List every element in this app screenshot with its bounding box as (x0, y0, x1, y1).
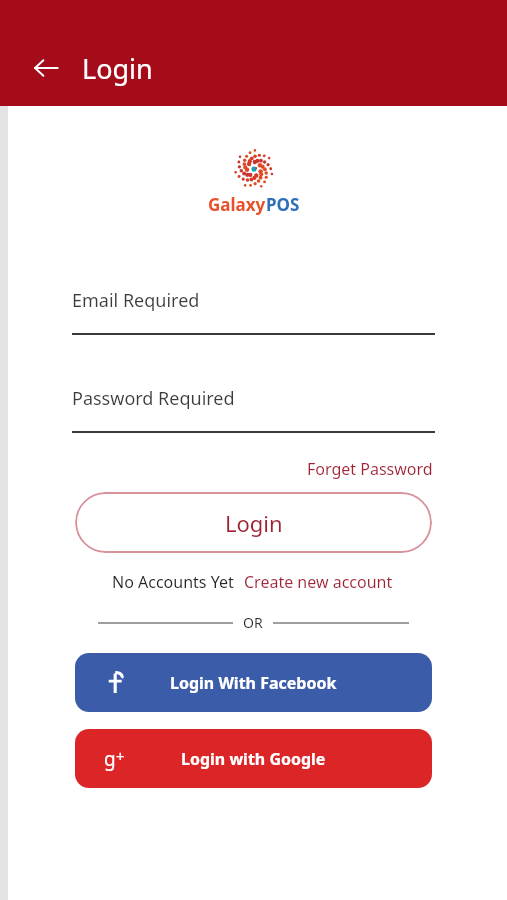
staticText: Email Required (72, 288, 200, 313)
button[interactable]: Login With Facebook (75, 653, 432, 712)
staticText: Create new account (244, 571, 393, 593)
button[interactable]: Email Required (72, 288, 435, 335)
button[interactable]: Password Required (72, 386, 435, 433)
staticText: Login (225, 508, 283, 538)
button[interactable]: g (75, 729, 432, 788)
staticText: Login with Google (181, 748, 326, 770)
staticText: g (104, 746, 116, 772)
button[interactable]: Create new account (242, 569, 395, 595)
staticText: Password Required (72, 386, 235, 411)
staticText: OR (243, 613, 263, 632)
staticText: Login (82, 50, 153, 87)
staticText: No Accounts Yet (112, 571, 234, 593)
button[interactable]: Back (22, 44, 70, 92)
button[interactable]: Forget Password (305, 456, 435, 482)
staticText: + (116, 746, 125, 766)
staticText: Login With Facebook (170, 672, 337, 694)
staticText: Forget Password (307, 458, 433, 480)
staticText: Galaxy (208, 193, 266, 216)
button[interactable]: Login (75, 492, 432, 553)
staticText: POS (266, 193, 300, 216)
